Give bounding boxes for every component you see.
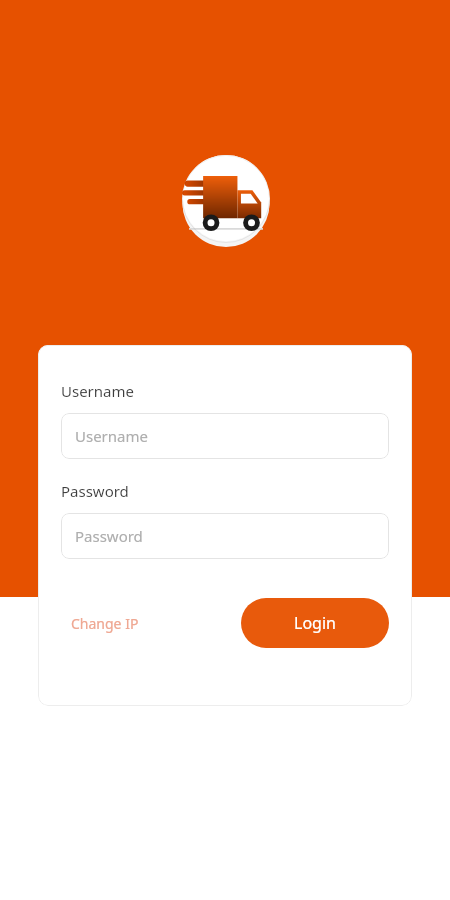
other: App logo (182, 155, 270, 243)
button[interactable]: Username (61, 413, 389, 459)
staticText: Change IP (71, 614, 139, 633)
staticText: Password (75, 526, 143, 546)
button[interactable]: Password (61, 513, 389, 559)
staticText: Password (61, 481, 129, 501)
staticText: Username (61, 381, 134, 401)
button[interactable]: Change IP (61, 606, 149, 641)
button[interactable]: Login (241, 598, 389, 648)
staticText: Username (75, 426, 148, 446)
staticText: Login (294, 612, 336, 634)
